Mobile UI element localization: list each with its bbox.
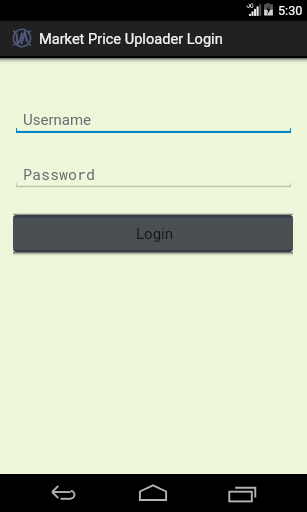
staticText: Market Price Uploader Login	[39, 30, 223, 47]
button[interactable]: Password	[16, 162, 291, 187]
staticText: Login	[136, 225, 173, 243]
button[interactable]: Home	[122, 474, 186, 512]
button[interactable]: Login	[13, 215, 293, 252]
staticText: Password	[23, 164, 96, 184]
button[interactable]: Username	[16, 107, 291, 132]
staticText: Username	[23, 111, 92, 129]
button[interactable]: Recent apps	[212, 474, 276, 512]
staticText: 5:30	[278, 3, 303, 18]
button[interactable]: Back	[38, 474, 102, 512]
